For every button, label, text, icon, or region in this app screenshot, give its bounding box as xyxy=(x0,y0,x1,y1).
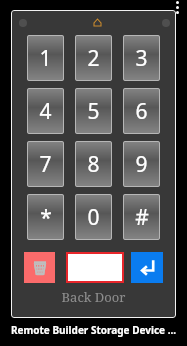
button[interactable]: 8 xyxy=(75,141,112,187)
staticText: 0 xyxy=(87,203,100,232)
staticText: 4 xyxy=(39,97,52,126)
staticText: # xyxy=(135,203,149,232)
staticText: 2 xyxy=(87,44,100,73)
staticText: 6 xyxy=(135,97,148,126)
button[interactable]: 4 xyxy=(27,88,64,134)
button[interactable]: More options xyxy=(176,1,179,14)
button[interactable]: # xyxy=(123,194,160,240)
button[interactable]: 5 xyxy=(75,88,112,134)
staticText: 1 xyxy=(39,44,52,73)
button[interactable]: * xyxy=(27,194,64,240)
staticText: 7 xyxy=(39,150,52,179)
button[interactable]: 3 xyxy=(123,35,160,81)
staticText: Remote Builder Storage Device ... xyxy=(11,323,177,337)
staticText: 8 xyxy=(87,150,100,179)
button[interactable]: 9 xyxy=(123,141,160,187)
button[interactable]: 2 xyxy=(75,35,112,81)
staticText: * xyxy=(40,203,52,232)
button[interactable]: Enter xyxy=(131,252,163,283)
button[interactable]: Delete xyxy=(24,252,55,283)
staticText: 9 xyxy=(135,150,148,179)
staticText: 3 xyxy=(135,44,148,73)
button[interactable]: 0 xyxy=(75,194,112,240)
button[interactable]: 6 xyxy=(123,88,160,134)
button[interactable]: 7 xyxy=(27,141,64,187)
button[interactable]: 1 xyxy=(27,35,64,81)
staticText: 5 xyxy=(87,97,100,126)
staticText: Back Door xyxy=(11,288,176,306)
